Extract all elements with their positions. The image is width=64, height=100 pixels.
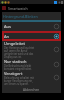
- button[interactable]: Abbrechen: [2, 86, 61, 93]
- staticText: konstant eingeschaltet.: [4, 67, 32, 70]
- staticText: Smartwatch: [8, 6, 28, 11]
- button[interactable]: Umgeleitet: [2, 41, 61, 58]
- staticText: umgeleitet wird und das: [4, 52, 34, 55]
- button[interactable]: An: [2, 31, 61, 41]
- button[interactable]: Verzögert: [2, 70, 61, 85]
- staticText: Hintergrund-Blinken: [3, 14, 61, 19]
- staticText: Der Hintergrund leuchtet: [4, 46, 35, 49]
- other: Select option: [53, 61, 60, 68]
- staticText: um Strom zu sparen.: [4, 82, 29, 85]
- other: Select option: [53, 33, 60, 40]
- staticText: Abbrechen: [23, 88, 40, 92]
- button[interactable]: App icon: [2, 6, 6, 10]
- staticText: An: [4, 34, 10, 39]
- other: Select option: [53, 46, 60, 53]
- staticText: Aus: [4, 24, 11, 29]
- staticText: auf, wenn ein Anruf: [4, 49, 28, 52]
- staticText: Die Beleuchtung bleibt: [4, 64, 32, 67]
- staticText: Display aus ist.: [4, 55, 22, 58]
- staticText: Nur statisch: [4, 59, 27, 64]
- staticText: kurzer Verzögerung ein,: [4, 79, 33, 82]
- other: Select option: [53, 74, 60, 81]
- staticText: Beleuchtung schaltet mit: [4, 76, 34, 79]
- staticText: Umgeleitet: [4, 41, 25, 46]
- other: Select option: [53, 23, 60, 30]
- button[interactable]: Nur statisch: [2, 58, 61, 70]
- button[interactable]: Aus: [2, 22, 61, 31]
- staticText: Verzögert: [4, 71, 23, 76]
